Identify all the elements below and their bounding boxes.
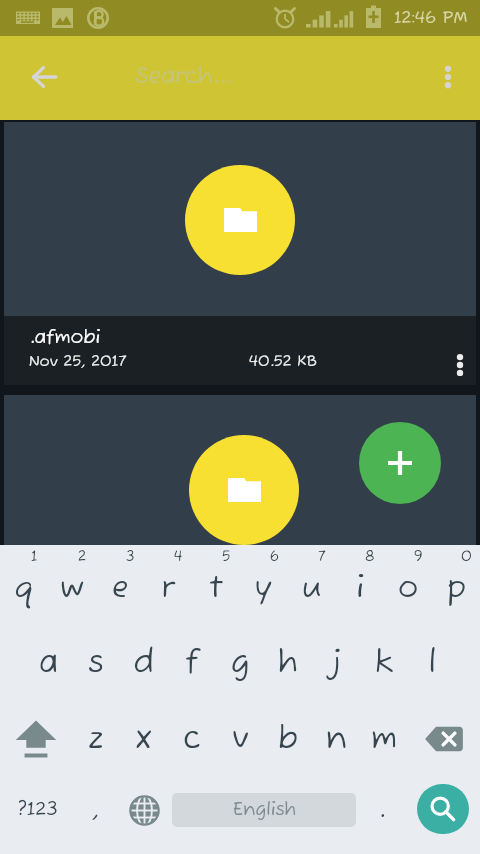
staticText: g — [231, 644, 250, 683]
button[interactable]: 0 — [432, 545, 480, 625]
button[interactable]: a — [24, 633, 72, 693]
button[interactable]: Backspace — [408, 709, 480, 769]
staticText: ?123 — [18, 798, 58, 822]
button[interactable]: f — [168, 633, 216, 693]
staticText: a — [39, 644, 58, 683]
staticText: x — [135, 720, 153, 759]
button[interactable]: h — [264, 633, 312, 693]
button[interactable]: ?123 — [8, 785, 68, 835]
staticText: t — [209, 570, 224, 608]
button[interactable]: , — [72, 785, 120, 835]
staticText: . — [378, 795, 386, 825]
staticText: 0 — [461, 548, 472, 565]
button[interactable]: . — [360, 785, 404, 835]
button[interactable]: Item options — [441, 346, 479, 384]
button[interactable]: 1 — [0, 545, 48, 625]
staticText: p — [447, 570, 466, 608]
button[interactable]: Add — [359, 422, 441, 504]
button[interactable]: b — [264, 709, 312, 769]
staticText: j — [330, 644, 342, 683]
staticText: q — [15, 570, 34, 608]
staticText: 6 — [270, 548, 279, 565]
staticText: 7 — [318, 548, 326, 565]
staticText: s — [88, 644, 104, 683]
button[interactable] — [4, 395, 476, 545]
button[interactable]: m — [360, 709, 408, 769]
staticText: h — [278, 644, 298, 683]
button[interactable]: More options — [428, 57, 468, 97]
staticText: .afmobi — [29, 326, 101, 350]
button[interactable]: 2 — [48, 545, 96, 625]
staticText: 8 — [365, 548, 375, 565]
staticText: l — [428, 644, 437, 683]
staticText: b — [278, 720, 298, 759]
button[interactable]: k — [360, 633, 408, 693]
button[interactable]: 6 — [240, 545, 288, 625]
staticText: f — [185, 644, 199, 683]
staticText: n — [326, 720, 347, 759]
staticText: z — [88, 720, 104, 759]
button[interactable]: j — [312, 633, 360, 693]
staticText: 1 — [31, 548, 38, 565]
button[interactable]: 8 — [336, 545, 384, 625]
staticText: 40.52 KB — [249, 352, 317, 371]
staticText: e — [112, 570, 129, 608]
staticText: , — [92, 795, 100, 825]
staticText: 9 — [414, 548, 423, 565]
button[interactable]: Change language — [120, 785, 168, 835]
button[interactable]: 9 — [384, 545, 432, 625]
button[interactable]: Back — [22, 55, 66, 99]
staticText: r — [162, 570, 175, 608]
staticText: Search... — [135, 62, 233, 91]
button[interactable]: 4 — [144, 545, 192, 625]
staticText: 4 — [174, 548, 183, 565]
button[interactable]: x — [120, 709, 168, 769]
button[interactable]: n — [312, 709, 360, 769]
button[interactable]: 3 — [96, 545, 144, 625]
staticText: 2 — [78, 548, 87, 565]
staticText: 5 — [222, 548, 231, 565]
staticText: k — [375, 644, 394, 683]
staticText: y — [255, 570, 273, 608]
staticText: v — [232, 720, 249, 759]
staticText: English — [233, 799, 296, 821]
button[interactable]: 5 — [192, 545, 240, 625]
staticText: i — [356, 570, 364, 608]
button[interactable]: c — [168, 709, 216, 769]
button[interactable]: English — [172, 793, 356, 827]
button[interactable]: Shift — [0, 709, 72, 769]
button[interactable]: l — [408, 633, 456, 693]
staticText: 12:46 PM — [394, 8, 468, 29]
button[interactable]: d — [120, 633, 168, 693]
staticText: d — [134, 644, 155, 683]
button[interactable]: .afmobi — [4, 316, 476, 385]
staticText: o — [398, 570, 419, 608]
staticText: c — [183, 720, 201, 759]
staticText: w — [60, 570, 85, 608]
button[interactable] — [4, 122, 476, 318]
button[interactable]: z — [72, 709, 120, 769]
button[interactable]: v — [216, 709, 264, 769]
staticText: m — [371, 720, 397, 759]
button[interactable]: s — [72, 633, 120, 693]
button[interactable]: Search — [417, 784, 469, 834]
staticText: u — [302, 570, 322, 608]
button[interactable]: 7 — [288, 545, 336, 625]
button[interactable]: g — [216, 633, 264, 693]
staticText: Nov 25, 2017 — [29, 352, 127, 371]
staticText: 3 — [126, 548, 135, 565]
